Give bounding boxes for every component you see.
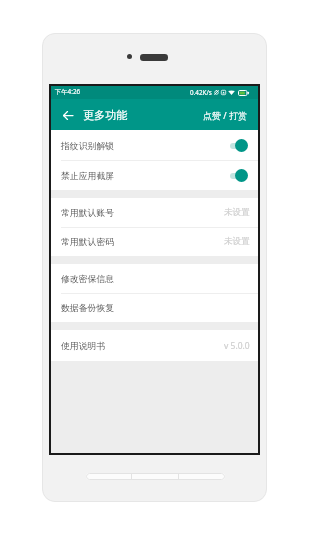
staticText: 点赞 / 打赏 xyxy=(203,109,248,121)
button[interactable]: 使用说明书 xyxy=(51,330,258,361)
button[interactable]: 常用默认账号 xyxy=(51,198,258,227)
staticText: 数据备份恢复 xyxy=(61,302,115,313)
staticText: 常用默认密码 xyxy=(61,236,115,247)
other: Toggle 禁止应用截屏 xyxy=(230,169,248,182)
button[interactable]: 禁止应用截屏 xyxy=(51,160,258,190)
staticText: 禁止应用截屏 xyxy=(61,170,115,181)
staticText: 下午4:26 xyxy=(55,87,81,96)
staticText: v 5.0.0 xyxy=(224,340,250,352)
staticText: 修改密保信息 xyxy=(61,273,115,284)
button[interactable]: 指纹识别解锁 xyxy=(51,130,258,160)
staticText: 指纹识别解锁 xyxy=(61,140,115,151)
staticText: 更多功能 xyxy=(83,108,128,122)
button[interactable]: 数据备份恢复 xyxy=(51,293,258,322)
staticText: 未设置 xyxy=(224,236,250,247)
button[interactable]: 常用默认密码 xyxy=(51,227,258,256)
button[interactable]: 修改密保信息 xyxy=(51,264,258,293)
button[interactable]: 点赞 / 打赏 xyxy=(199,103,252,127)
staticText: 未设置 xyxy=(224,207,250,218)
staticText: 0.42K/s xyxy=(190,88,212,97)
other: Toggle 指纹识别解锁 xyxy=(230,139,248,152)
staticText: 常用默认账号 xyxy=(61,207,115,218)
button[interactable]: Back xyxy=(60,105,76,125)
staticText: 使用说明书 xyxy=(61,340,106,351)
